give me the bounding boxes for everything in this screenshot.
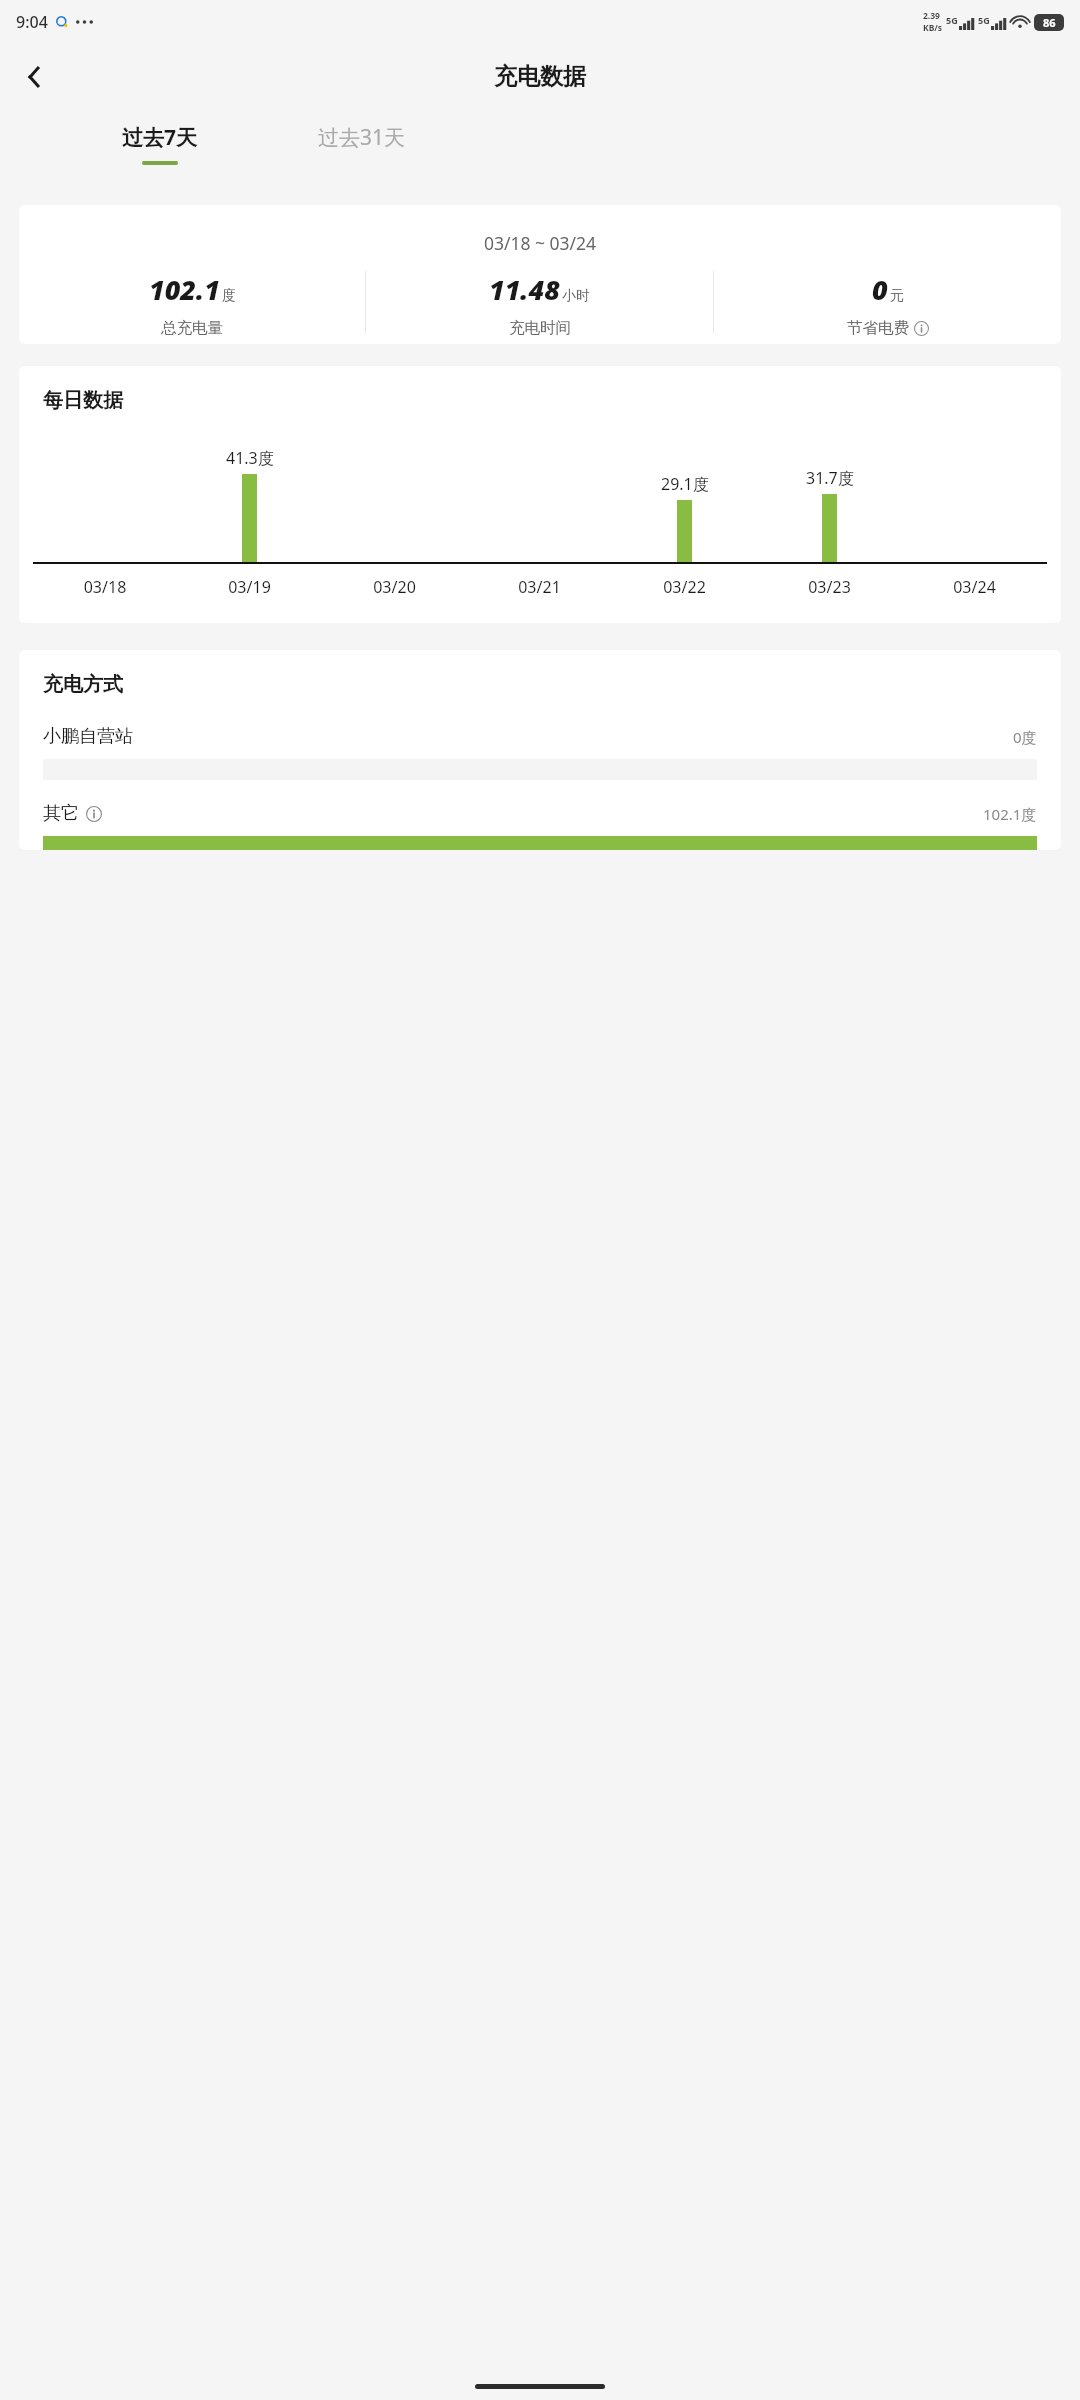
staticText: 03/22 (612, 576, 757, 598)
staticText: 03/19 (177, 576, 322, 598)
staticText: 03/18 ~ 03/24 (19, 231, 1061, 255)
button[interactable]: 03/18 ~ 03/24 (19, 205, 1061, 344)
button[interactable]: Info (86, 806, 102, 822)
staticText: 03/20 (322, 576, 467, 598)
staticText: 充电时间 (509, 318, 571, 338)
staticText: 29.1度 (661, 473, 709, 495)
staticText: 过去7天 (122, 123, 198, 152)
button[interactable]: 每日数据 (19, 366, 1061, 623)
staticText: 5G (946, 14, 958, 26)
staticText: 5G (978, 14, 990, 26)
staticText: 0 (872, 271, 888, 308)
staticText: 小鹏自营站 (43, 725, 133, 748)
button[interactable]: Info (914, 321, 929, 336)
staticText: 102.1 (149, 271, 220, 308)
staticText: 充电数据 (494, 62, 586, 91)
staticText: 元 (890, 287, 904, 305)
staticText: 节省电费 (847, 318, 909, 338)
staticText: 11.48 (489, 271, 560, 308)
staticText: 小时 (562, 287, 590, 305)
staticText: 总充电量 (161, 318, 223, 338)
staticText: KB/s (923, 22, 943, 34)
staticText: 86 (1043, 15, 1056, 30)
button[interactable]: 过去7天 (116, 110, 204, 165)
button[interactable]: Back (10, 53, 58, 101)
staticText: 03/18 (33, 576, 177, 598)
staticText: 03/24 (902, 576, 1047, 598)
staticText: 度 (222, 287, 236, 305)
staticText: 过去31天 (318, 123, 406, 152)
staticText: 03/23 (757, 576, 902, 598)
button[interactable]: 过去31天 (312, 110, 412, 161)
staticText: 102.1度 (983, 804, 1037, 824)
button[interactable]: 小鹏自营站 (43, 725, 1037, 780)
staticText: 充电方式 (43, 672, 123, 697)
staticText: 每日数据 (43, 388, 123, 413)
staticText: 9:04 (16, 11, 48, 33)
button[interactable]: 其它 (43, 802, 1037, 850)
staticText: 03/21 (467, 576, 612, 598)
staticText: 31.7度 (806, 467, 854, 489)
staticText: 2.39 (923, 10, 940, 22)
staticText: 41.3度 (226, 447, 274, 469)
staticText: 0度 (1013, 727, 1037, 747)
staticText: 其它 (43, 802, 79, 825)
